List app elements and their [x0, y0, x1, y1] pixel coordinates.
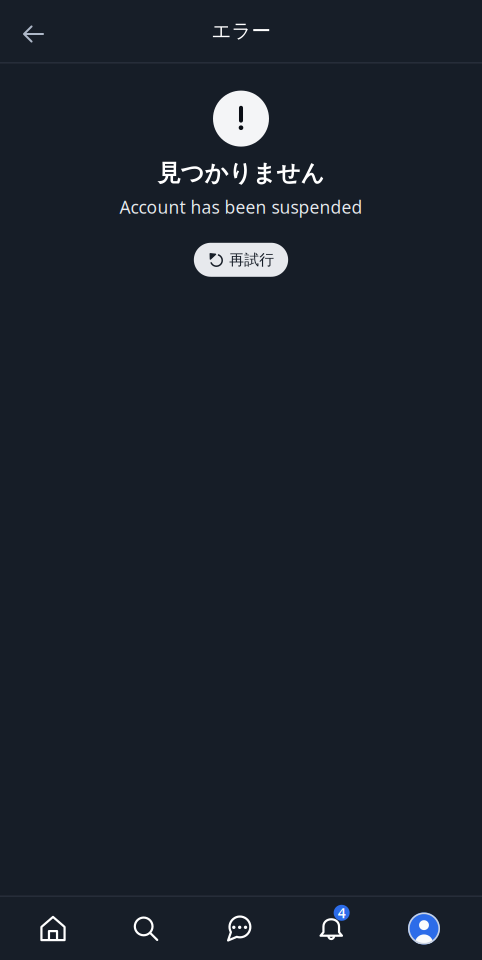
- button[interactable]: Notifications: [303, 901, 359, 955]
- button[interactable]: Profile: [396, 901, 452, 955]
- button[interactable]: Back: [11, 12, 55, 56]
- staticText: エラー: [211, 19, 270, 43]
- button[interactable]: Search: [118, 901, 174, 955]
- staticText: 再試行: [229, 250, 274, 269]
- button[interactable]: Home: [25, 901, 81, 955]
- staticText: 見つかりません: [157, 159, 324, 188]
- staticText: Account has been suspended: [119, 195, 362, 219]
- button[interactable]: 再試行: [194, 243, 288, 277]
- staticText: 4: [338, 903, 346, 922]
- button[interactable]: Messages: [210, 901, 266, 955]
